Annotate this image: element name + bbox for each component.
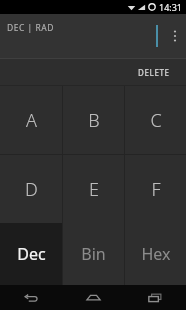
staticText: Bin — [81, 243, 106, 265]
button[interactable]: More options — [164, 14, 186, 58]
button[interactable]: Dec — [0, 223, 62, 285]
button[interactable]: Recent apps — [124, 285, 186, 310]
button[interactable]: F — [125, 155, 186, 223]
button[interactable]: Home — [62, 285, 124, 310]
staticText: DEC | RAD — [7, 22, 54, 34]
staticText: C — [150, 108, 162, 133]
button[interactable]: A — [0, 86, 62, 154]
staticText: 14:31 — [159, 1, 183, 13]
button[interactable]: DELETE — [130, 59, 186, 85]
staticText: D — [25, 177, 38, 202]
staticText: DELETE — [138, 67, 170, 78]
button[interactable]: E — [63, 155, 124, 223]
button[interactable]: Bin — [63, 223, 124, 285]
staticText: B — [88, 108, 100, 133]
button[interactable]: C — [125, 86, 186, 154]
staticText: E — [89, 177, 99, 202]
button[interactable]: D — [0, 155, 62, 223]
staticText: F — [151, 177, 161, 202]
staticText: A — [26, 108, 37, 133]
staticText: Dec — [17, 243, 46, 265]
staticText: Hex — [141, 243, 171, 265]
button[interactable]: B — [63, 86, 124, 154]
button[interactable]: Hex — [125, 223, 186, 285]
button[interactable]: Back — [0, 285, 62, 310]
